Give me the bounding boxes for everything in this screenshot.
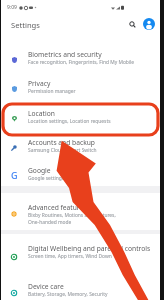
staticText: G [11,169,18,181]
staticText: Google settings [28,175,65,182]
staticText: Accounts and backup [28,138,95,147]
staticText: Bixby Routines, Motions and gestures, On… [28,212,116,225]
staticText: Face recognition, Fingerprints, Find My … [28,59,135,66]
staticText: Screen time, App timers, Wind Down [28,253,112,260]
staticText: Settings [11,20,40,30]
staticText: Location [28,109,55,118]
button[interactable]: Privacy [1,69,160,99]
button[interactable]: Accounts and backup [1,128,160,156]
button[interactable]: Location [1,99,160,128]
button[interactable]: Digital Wellbeing and parental controls [1,234,160,272]
staticText: Battery, Storage, Memory, Security [28,291,108,298]
staticText: Google [28,166,51,175]
staticText: Location settings, Location requests [28,118,111,125]
staticText: Biometrics and security [28,50,102,59]
staticText: Advanced features [28,203,87,212]
button[interactable]: Advanced features [1,193,160,230]
button[interactable]: Account [143,18,155,30]
staticText: Digital Wellbeing and parental controls [28,244,151,253]
staticText: Device care [28,282,64,291]
button[interactable]: Biometrics and security [1,40,160,69]
staticText: 9:09 [7,4,17,11]
button[interactable]: G [1,156,160,186]
button[interactable]: Search [126,18,138,30]
staticText: Privacy [28,79,51,88]
staticText: Samsung Cloud, Smart Switch [28,147,97,154]
button[interactable]: Device care [1,272,160,300]
staticText: Permission manager [28,88,76,95]
